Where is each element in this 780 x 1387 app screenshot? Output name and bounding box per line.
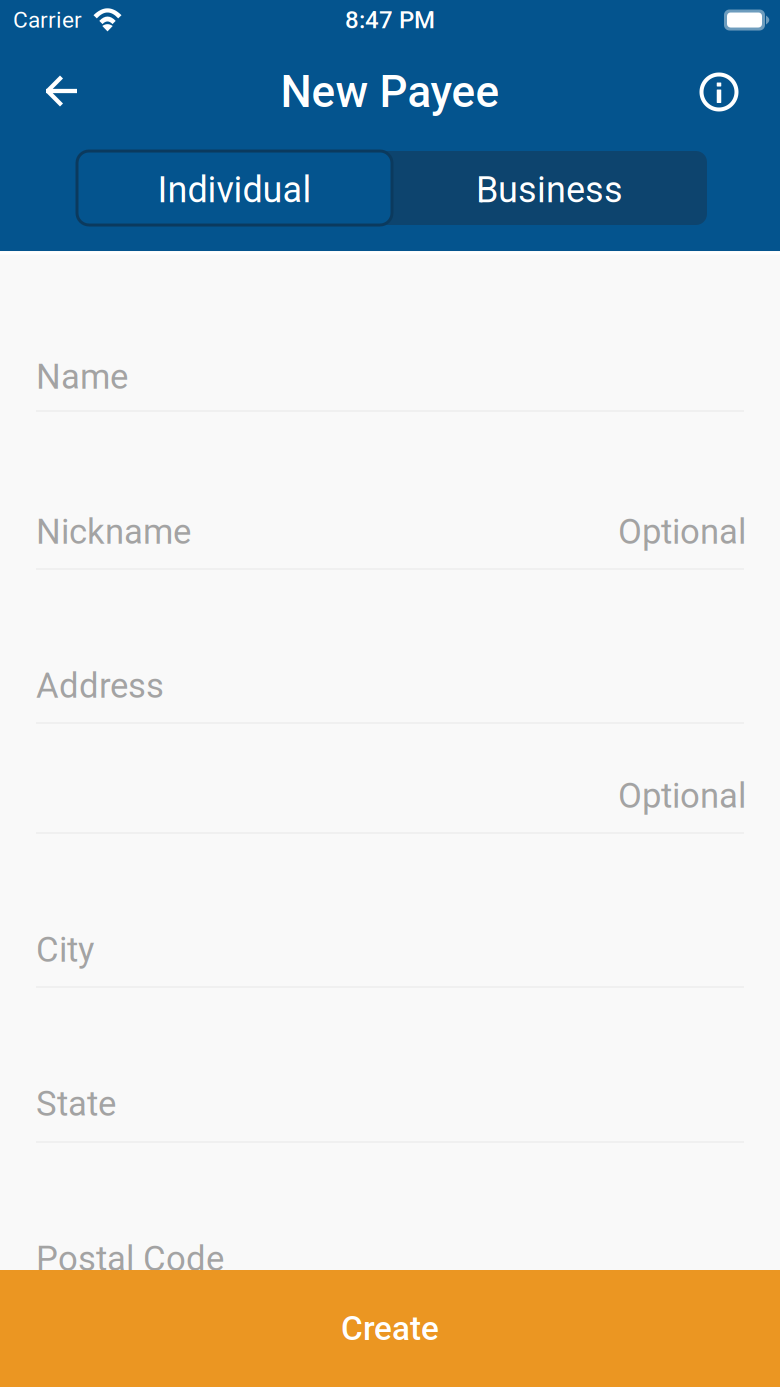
button[interactable]: Back [26, 57, 96, 127]
staticText: Individual [157, 169, 311, 211]
staticText: Carrier [13, 7, 82, 33]
staticText: New Payee [280, 66, 499, 118]
staticText: Postal Code [36, 1239, 224, 1279]
staticText: Optional [618, 512, 746, 552]
staticText: Create [341, 1309, 439, 1348]
staticText: Name [36, 357, 128, 397]
button[interactable]: Business [392, 151, 707, 225]
button[interactable]: Create [0, 1270, 780, 1387]
button[interactable]: City [36, 876, 744, 1016]
button[interactable]: Nickname [36, 455, 744, 598]
button[interactable]: Address [36, 612, 744, 752]
button[interactable]: State [36, 1030, 744, 1171]
button[interactable]: Individual [77, 151, 392, 225]
staticText: Optional [618, 776, 746, 816]
staticText: 8:47 PM [345, 6, 435, 34]
staticText: Address [36, 666, 164, 706]
staticText: State [36, 1084, 116, 1124]
button[interactable]: Optional [36, 752, 744, 862]
button[interactable]: Postal Code [36, 1185, 744, 1326]
staticText: Business [476, 169, 623, 211]
staticText: City [36, 930, 94, 970]
button[interactable]: Name [36, 300, 744, 440]
button[interactable]: Information [684, 57, 754, 127]
staticText: Nickname [36, 512, 191, 552]
